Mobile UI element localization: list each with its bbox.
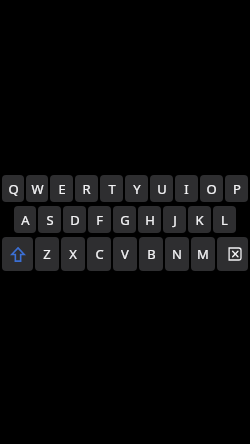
staticText: X xyxy=(69,245,77,263)
staticText: K xyxy=(195,211,204,229)
button[interactable]: V xyxy=(113,237,137,271)
staticText: P xyxy=(233,180,241,198)
staticText: I xyxy=(184,180,189,198)
button[interactable]: I xyxy=(175,175,198,202)
staticText: L xyxy=(221,211,228,229)
button[interactable]: U xyxy=(150,175,173,202)
staticText: O xyxy=(206,180,217,198)
staticText: R xyxy=(82,180,91,198)
button[interactable]: D xyxy=(63,206,86,233)
staticText: Q xyxy=(8,180,19,198)
staticText: H xyxy=(145,211,155,229)
staticText: C xyxy=(95,245,104,263)
staticText: E xyxy=(58,180,66,198)
staticText: T xyxy=(108,180,116,198)
staticText: S xyxy=(46,211,54,229)
button[interactable]: X xyxy=(61,237,85,271)
staticText: U xyxy=(157,180,167,198)
button[interactable]: Z xyxy=(35,237,59,271)
staticText: V xyxy=(121,245,129,263)
button[interactable]: H xyxy=(138,206,161,233)
button[interactable]: N xyxy=(165,237,189,271)
staticText: Z xyxy=(43,245,51,263)
staticText: Y xyxy=(133,180,141,198)
button[interactable]: L xyxy=(213,206,236,233)
button[interactable]: Backspace xyxy=(217,237,248,271)
button[interactable]: R xyxy=(75,175,98,202)
staticText: M xyxy=(197,245,209,263)
staticText: W xyxy=(31,180,44,198)
button[interactable]: O xyxy=(200,175,223,202)
button[interactable]: F xyxy=(88,206,111,233)
button[interactable]: S xyxy=(38,206,61,233)
staticText: J xyxy=(173,211,177,229)
button[interactable]: K xyxy=(188,206,211,233)
staticText: A xyxy=(21,211,30,229)
button[interactable]: B xyxy=(139,237,163,271)
button[interactable]: Q xyxy=(2,175,24,202)
staticText: B xyxy=(147,245,156,263)
button[interactable]: P xyxy=(225,175,248,202)
staticText: G xyxy=(120,211,130,229)
button[interactable]: W xyxy=(26,175,48,202)
staticText: D xyxy=(70,211,80,229)
button[interactable]: C xyxy=(87,237,111,271)
button[interactable]: M xyxy=(191,237,215,271)
button[interactable]: Y xyxy=(125,175,148,202)
button[interactable]: Shift xyxy=(2,237,33,271)
button[interactable]: A xyxy=(14,206,36,233)
staticText: F xyxy=(96,211,103,229)
button[interactable]: J xyxy=(163,206,186,233)
button[interactable]: E xyxy=(50,175,73,202)
button[interactable]: G xyxy=(113,206,136,233)
staticText: N xyxy=(172,245,182,263)
button[interactable]: T xyxy=(100,175,123,202)
